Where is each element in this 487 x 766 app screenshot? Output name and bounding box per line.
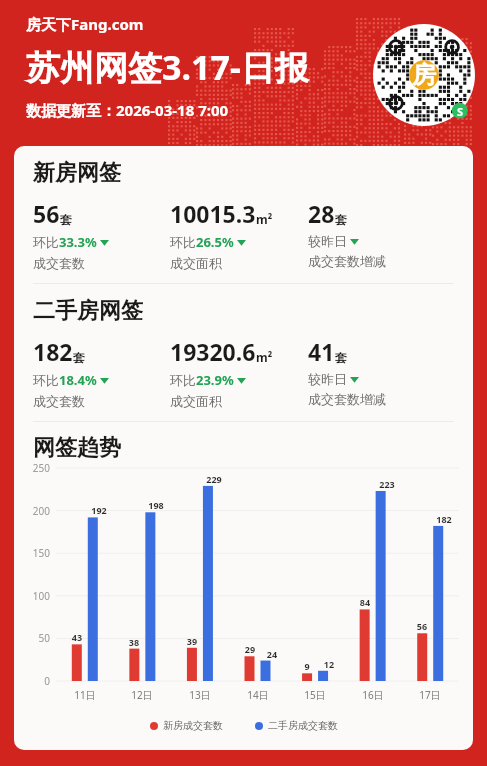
- button[interactable]: 二手房成交套数: [251, 715, 342, 736]
- staticText: 14日: [242, 688, 274, 702]
- staticText: 10015.3: [170, 198, 256, 229]
- staticText: 50: [18, 631, 50, 645]
- staticText: 12日: [126, 688, 158, 702]
- staticText: 29: [238, 643, 262, 655]
- button[interactable]: 扫描二维码关注: [373, 24, 475, 126]
- staticText: m²: [256, 349, 273, 365]
- staticText: 39: [180, 635, 204, 647]
- staticText: 229: [202, 473, 226, 485]
- staticText: 19320.6: [170, 336, 256, 367]
- staticText: 150: [18, 546, 50, 560]
- staticText: 环比: [33, 372, 59, 388]
- staticText: 较昨日: [308, 371, 347, 387]
- staticText: 环比: [170, 372, 196, 388]
- staticText: 数据更新至：2026-03-18 7:00: [26, 100, 229, 120]
- staticText: 250: [18, 461, 50, 475]
- staticText: 24: [260, 648, 284, 660]
- staticText: 成交套数增减: [308, 391, 386, 407]
- staticText: 100: [18, 589, 50, 603]
- staticText: 二手房成交套数: [268, 719, 338, 732]
- staticText: 223: [375, 478, 399, 490]
- staticText: 12: [317, 658, 341, 670]
- staticText: 28: [308, 198, 335, 229]
- staticText: 26.5%: [196, 233, 234, 251]
- staticText: 182: [33, 336, 73, 367]
- button[interactable]: 新房成交套数: [146, 715, 227, 736]
- staticText: 16日: [357, 688, 389, 702]
- staticText: 18.4%: [59, 371, 97, 389]
- staticText: 成交面积: [170, 393, 222, 409]
- staticText: 198: [144, 499, 168, 511]
- staticText: 套: [335, 350, 347, 365]
- staticText: 套: [335, 212, 347, 227]
- staticText: 环比: [170, 234, 196, 250]
- staticText: 套: [60, 212, 72, 227]
- staticText: 13日: [184, 688, 216, 702]
- staticText: 84: [353, 596, 377, 608]
- staticText: S: [457, 104, 464, 119]
- staticText: 192: [87, 504, 111, 516]
- staticText: 环比: [33, 234, 59, 250]
- staticText: 苏州网签3.17-日报: [26, 44, 309, 90]
- staticText: 33.3%: [59, 233, 97, 251]
- staticText: m²: [256, 211, 273, 227]
- staticText: 新房成交套数: [163, 719, 223, 732]
- staticText: 房: [412, 60, 436, 90]
- staticText: 成交套数: [33, 393, 85, 409]
- staticText: 200: [18, 504, 50, 518]
- staticText: 成交面积: [170, 255, 222, 271]
- staticText: 新房网签: [33, 159, 121, 187]
- staticText: 成交套数增减: [308, 253, 386, 269]
- staticText: 成交套数: [33, 255, 85, 271]
- staticText: 较昨日: [308, 233, 347, 249]
- staticText: 56: [410, 620, 434, 632]
- staticText: 二手房网签: [33, 297, 143, 325]
- staticText: 房天下Fang.com: [26, 14, 144, 34]
- staticText: 11日: [69, 688, 101, 702]
- staticText: 38: [122, 636, 146, 648]
- staticText: 182: [432, 513, 456, 525]
- staticText: 网签趋势: [33, 434, 121, 462]
- staticText: 套: [73, 350, 85, 365]
- staticText: 17日: [414, 688, 446, 702]
- staticText: 41: [308, 336, 335, 367]
- staticText: 43: [65, 631, 89, 643]
- staticText: 23.9%: [196, 371, 234, 389]
- staticText: 9: [295, 660, 319, 672]
- staticText: 15日: [299, 688, 331, 702]
- staticText: 0: [18, 674, 50, 688]
- staticText: 56: [33, 198, 60, 229]
